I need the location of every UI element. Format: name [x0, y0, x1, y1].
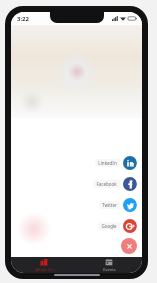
staticText: Google: [101, 223, 117, 229]
button[interactable]: Facebook: [93, 176, 137, 192]
button[interactable]: About Us: [11, 257, 76, 273]
staticText: 3:22: [17, 15, 29, 23]
button[interactable]: LinkedIn: [95, 155, 137, 171]
staticText: Twitter: [102, 202, 117, 208]
button[interactable]: Events: [76, 257, 142, 273]
button[interactable]: Google: [98, 218, 137, 234]
button[interactable]: Twitter: [99, 197, 137, 213]
button[interactable]: Close share menu: [121, 238, 137, 254]
staticText: LinkedIn: [98, 160, 117, 166]
staticText: Facebook: [96, 181, 117, 187]
staticText: Events: [103, 267, 116, 272]
staticText: About Us: [35, 267, 53, 272]
